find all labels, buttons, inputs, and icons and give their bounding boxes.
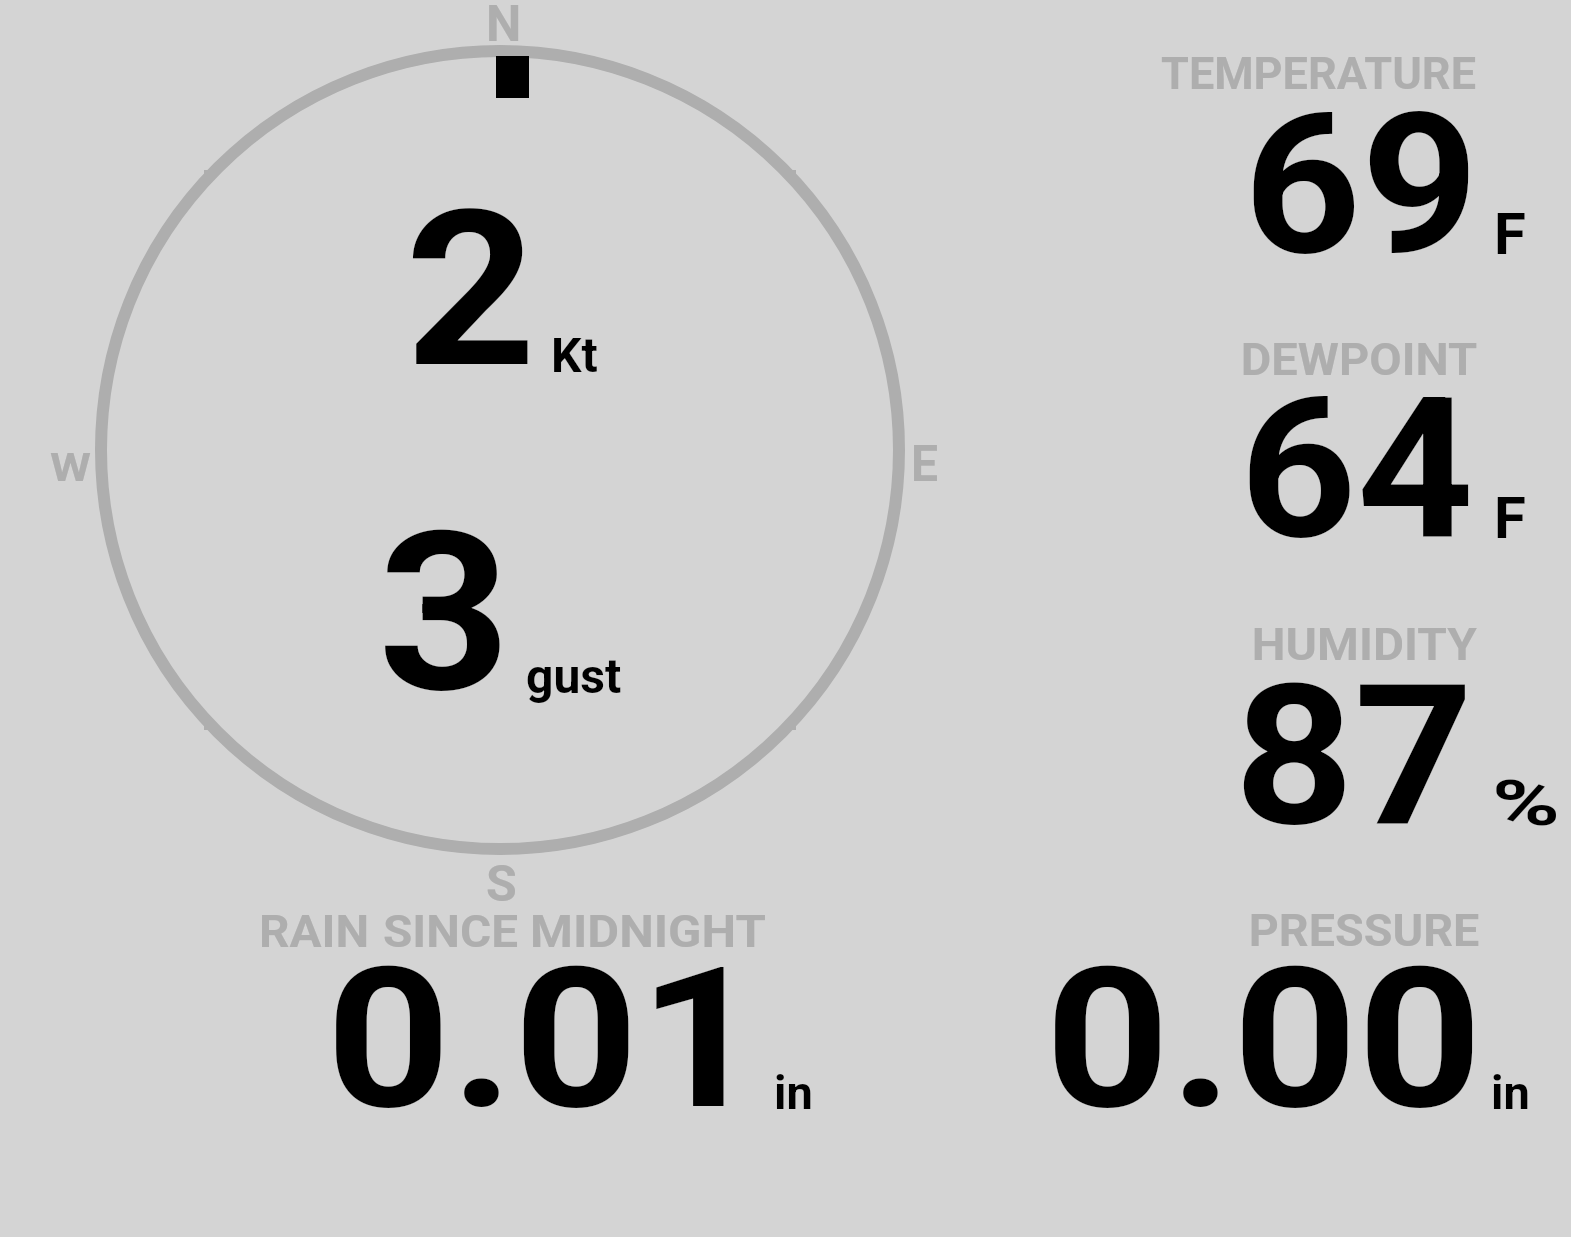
staticText: E xyxy=(911,435,939,494)
staticText: PRESSURE xyxy=(1249,904,1480,957)
staticText: Kt xyxy=(551,327,598,383)
staticText: SINCE xyxy=(383,905,519,958)
staticText: W xyxy=(50,446,92,491)
staticText: N xyxy=(486,0,522,54)
staticText: in xyxy=(774,1065,813,1120)
staticText: 0.01 xyxy=(326,926,764,1153)
staticText: DEWPOINT xyxy=(1241,333,1478,386)
button[interactable]: Pressure 0.00 in xyxy=(1040,900,1560,1120)
staticText: 87 xyxy=(1234,643,1474,870)
staticText: 0.00 xyxy=(1045,926,1483,1153)
button[interactable]: Wind 2 knots, gusting 3, from the north xyxy=(95,45,905,855)
staticText: F xyxy=(1494,484,1526,552)
staticText: in xyxy=(1491,1065,1530,1120)
staticText: F xyxy=(1494,200,1526,268)
staticText: 3 xyxy=(378,485,511,743)
button[interactable]: Humidity 87 percent xyxy=(1150,612,1560,832)
staticText: % xyxy=(1492,767,1561,841)
staticText: 2 xyxy=(405,164,536,417)
staticText: RAIN xyxy=(259,905,369,958)
button[interactable]: Dew point 64 F xyxy=(1150,330,1560,550)
button[interactable]: Temperature 69 F xyxy=(1150,45,1560,265)
staticText: HUMIDITY xyxy=(1252,618,1477,671)
staticText: gust xyxy=(526,648,622,704)
staticText: MIDNIGHT xyxy=(530,905,766,958)
staticText: 64 xyxy=(1240,356,1474,583)
staticText: 69 xyxy=(1244,72,1479,299)
button[interactable]: Rain since midnight 0.01 in xyxy=(250,900,820,1120)
staticText: TEMPERATURE xyxy=(1161,47,1476,100)
staticText: S xyxy=(486,855,517,914)
